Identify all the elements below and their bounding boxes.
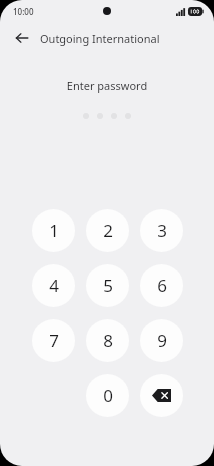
button[interactable]: 3 (140, 209, 183, 252)
button[interactable]: 6 (140, 264, 183, 307)
staticText: Enter password (0, 78, 214, 93)
staticText: 6 (157, 274, 167, 297)
staticText: 2 (103, 219, 113, 242)
staticText: 10:00 (13, 6, 34, 17)
button[interactable]: 0 (86, 374, 129, 417)
staticText: Outgoing International Roaming C... (40, 31, 204, 46)
staticText: 3 (157, 219, 167, 242)
button[interactable]: Back (9, 25, 35, 51)
staticText: 0 (103, 384, 113, 407)
staticText: 4 (49, 274, 59, 297)
staticText: 1 (49, 219, 59, 242)
button[interactable]: 2 (86, 209, 129, 252)
staticText: 5 (103, 274, 113, 297)
button[interactable]: 7 (32, 319, 75, 362)
button[interactable]: 1 (32, 209, 75, 252)
button[interactable]: 9 (140, 319, 183, 362)
staticText: 9 (157, 329, 167, 352)
staticText: 8 (103, 329, 113, 352)
button[interactable]: Backspace (140, 374, 183, 417)
button[interactable]: 8 (86, 319, 129, 362)
staticText: 7 (49, 329, 59, 352)
button[interactable]: 5 (86, 264, 129, 307)
button[interactable]: 4 (32, 264, 75, 307)
